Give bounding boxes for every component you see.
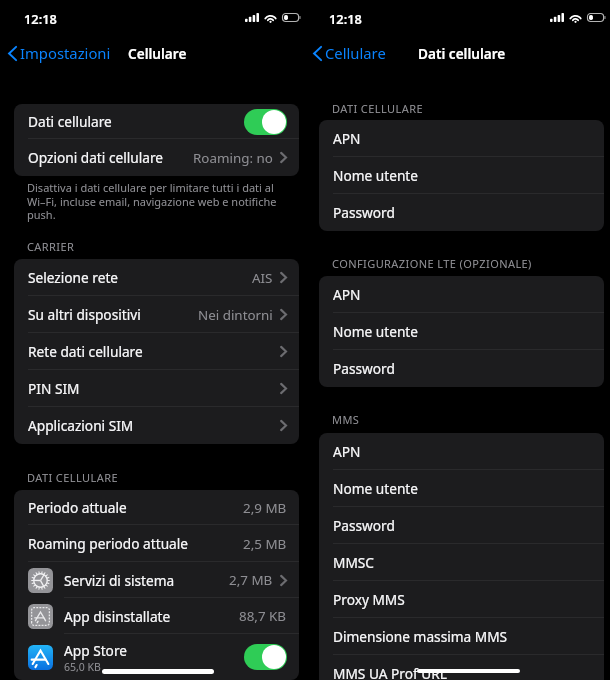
staticText: Nome utente: [333, 322, 419, 341]
staticText: CONFIGURAZIONE LTE (OPZIONALE): [332, 256, 532, 271]
button[interactable]: Servizi di sistema: [14, 562, 299, 598]
button[interactable]: Applicazioni SIM: [14, 407, 299, 444]
staticText: Selezione rete: [28, 268, 119, 287]
button[interactable]: Impostazioni: [0, 39, 117, 67]
button[interactable]: Cellulare: [305, 39, 392, 67]
button[interactable]: Toggle: [244, 109, 287, 135]
button[interactable]: App Store: [14, 634, 299, 680]
button[interactable]: MMSC: [319, 544, 604, 581]
staticText: App Store: [64, 641, 127, 660]
button[interactable]: Dati cellulare: [14, 104, 299, 139]
button[interactable]: Periodo attuale: [14, 490, 299, 525]
button[interactable]: MMS UA Prof URL: [319, 655, 604, 680]
staticText: Password: [333, 359, 395, 378]
staticText: Roaming periodo attuale: [28, 534, 189, 553]
staticText: Disattiva i dati cellulare per limitare …: [27, 180, 277, 222]
staticText: Cellulare: [325, 43, 386, 63]
button[interactable]: Password: [319, 507, 604, 544]
staticText: PIN SIM: [28, 379, 80, 398]
staticText: 65,0 KB: [64, 660, 101, 674]
staticText: Applicazioni SIM: [28, 416, 134, 435]
button[interactable]: Password: [319, 350, 604, 387]
button[interactable]: Nome utente: [319, 313, 604, 350]
staticText: APN: [333, 129, 361, 148]
staticText: 88,7 KB: [239, 607, 287, 625]
staticText: Roaming: no: [193, 149, 273, 167]
button[interactable]: Selezione rete: [14, 259, 299, 296]
staticText: 2,7 MB: [229, 571, 273, 589]
button[interactable]: Su altri dispositivi: [14, 296, 299, 333]
staticText: 12:18: [24, 10, 57, 27]
button[interactable]: Rete dati cellulare: [14, 333, 299, 370]
staticText: Servizi di sistema: [64, 571, 175, 590]
staticText: Cellulare: [128, 44, 187, 63]
staticText: Opzioni dati cellulare: [28, 148, 164, 167]
staticText: DATI CELLULARE: [332, 101, 423, 116]
button[interactable]: APN: [319, 433, 604, 470]
button[interactable]: Toggle: [244, 644, 287, 670]
button[interactable]: PIN SIM: [14, 370, 299, 407]
button[interactable]: Nome utente: [319, 470, 604, 507]
staticText: Dati cellulare: [28, 112, 112, 131]
button[interactable]: App disinstallate: [14, 598, 299, 634]
button[interactable]: Password: [319, 194, 604, 231]
staticText: MMS: [332, 412, 360, 427]
staticText: Rete dati cellulare: [28, 342, 143, 361]
staticText: 12:18: [329, 10, 362, 27]
staticText: Password: [333, 203, 395, 222]
staticText: Password: [333, 516, 395, 535]
button[interactable]: Dimensione massima MMS: [319, 618, 604, 655]
button[interactable]: Nome utente: [319, 157, 604, 194]
staticText: App disinstallate: [64, 607, 171, 626]
button[interactable]: APN: [319, 120, 604, 157]
staticText: Dimensione massima MMS: [333, 627, 508, 646]
staticText: 2,5 MB: [243, 535, 287, 553]
staticText: 2,9 MB: [243, 499, 287, 517]
staticText: APN: [333, 442, 361, 461]
staticText: MMSC: [333, 553, 374, 572]
staticText: Nei dintorni: [198, 306, 273, 324]
button[interactable]: Opzioni dati cellulare: [14, 139, 299, 176]
staticText: AIS: [252, 269, 273, 287]
button[interactable]: Roaming periodo attuale: [14, 525, 299, 562]
staticText: DATI CELLULARE: [27, 470, 118, 485]
staticText: Su altri dispositivi: [28, 305, 141, 324]
staticText: Proxy MMS: [333, 590, 405, 609]
staticText: Nome utente: [333, 166, 419, 185]
staticText: Impostazioni: [20, 43, 111, 63]
staticText: Nome utente: [333, 479, 419, 498]
staticText: Periodo attuale: [28, 498, 127, 517]
button[interactable]: APN: [319, 276, 604, 313]
staticText: Dati cellulare: [418, 44, 506, 63]
staticText: CARRIER: [27, 239, 75, 254]
staticText: APN: [333, 285, 361, 304]
button[interactable]: Proxy MMS: [319, 581, 604, 618]
staticText: MMS UA Prof URL: [333, 664, 447, 680]
